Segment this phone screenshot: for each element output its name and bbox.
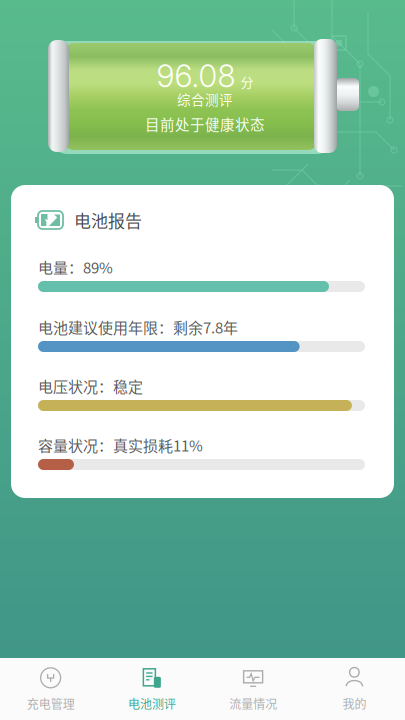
staticText: 充电管理 (27, 695, 75, 712)
staticText: 分 (240, 72, 253, 91)
staticText: 96.08 (156, 57, 235, 94)
button[interactable]: 充电管理 (0, 658, 101, 720)
button[interactable]: 我的 (304, 658, 405, 720)
staticText: 电池测评 (128, 695, 176, 712)
staticText: 我的 (342, 695, 366, 712)
staticText: 综合测评 (177, 89, 233, 109)
button[interactable]: 流量情况 (202, 658, 304, 720)
staticText: 目前处于健康状态 (145, 113, 265, 134)
staticText: 电量：89% (38, 256, 113, 278)
staticText: 容量状况：真实损耗11% (38, 434, 203, 456)
staticText: 电池建议使用年限：剩余7.8年 (38, 316, 238, 338)
staticText: 流量情况 (229, 695, 277, 712)
staticText: 电池报告 (74, 208, 142, 232)
staticText: 电压状况：稳定 (38, 375, 143, 397)
button[interactable]: 电池测评 (101, 658, 202, 720)
